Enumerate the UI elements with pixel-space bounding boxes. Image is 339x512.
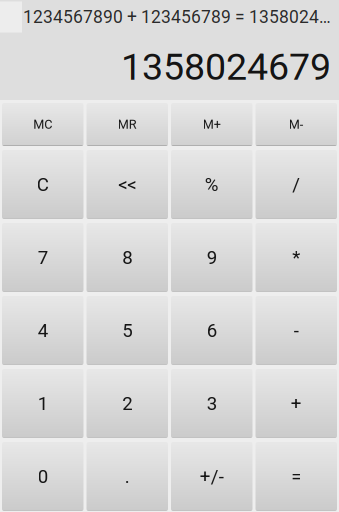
button[interactable]: 8: [86, 223, 168, 292]
staticText: 9: [207, 247, 217, 268]
button[interactable]: MC: [2, 103, 83, 146]
staticText: 5: [122, 320, 132, 341]
staticText: 8: [122, 247, 132, 268]
staticText: +/-: [200, 466, 224, 487]
button[interactable]: 2: [86, 369, 168, 438]
staticText: 1234567890 + 123456789 = 1358024679 |: [23, 7, 339, 27]
staticText: .: [125, 466, 130, 487]
staticText: 1: [38, 393, 48, 414]
staticText: M+: [203, 117, 221, 132]
staticText: <<: [118, 174, 136, 195]
staticText: 2: [122, 393, 132, 414]
button[interactable]: 6: [171, 296, 252, 365]
button[interactable]: 0: [2, 442, 83, 511]
staticText: M-: [289, 117, 304, 132]
button[interactable]: /: [255, 150, 337, 219]
button[interactable]: -: [255, 296, 337, 365]
button[interactable]: M-: [255, 103, 337, 146]
staticText: =: [291, 466, 301, 487]
button[interactable]: .: [86, 442, 168, 511]
staticText: 7: [38, 247, 48, 268]
button[interactable]: =: [255, 442, 337, 511]
staticText: MR: [118, 117, 137, 132]
staticText: 4: [38, 320, 48, 341]
button[interactable]: <<: [86, 150, 168, 219]
staticText: %: [205, 174, 219, 195]
button[interactable]: 4: [2, 296, 83, 365]
staticText: *: [292, 247, 300, 268]
staticText: -: [294, 320, 299, 341]
button[interactable]: +/-: [171, 442, 252, 511]
button[interactable]: MR: [86, 103, 168, 146]
button[interactable]: 9: [171, 223, 252, 292]
button[interactable]: *: [255, 223, 337, 292]
staticText: 6: [207, 320, 217, 341]
button[interactable]: %: [171, 150, 252, 219]
button[interactable]: 7: [2, 223, 83, 292]
button[interactable]: C: [2, 150, 83, 219]
button[interactable]: +: [255, 369, 337, 438]
staticText: 1358024679: [121, 45, 331, 89]
staticText: /: [292, 174, 300, 195]
staticText: +: [291, 393, 302, 414]
staticText: MC: [33, 117, 52, 132]
button[interactable]: 3: [171, 369, 252, 438]
staticText: 0: [38, 466, 48, 487]
staticText: C: [37, 174, 49, 195]
button[interactable]: 1: [2, 369, 83, 438]
button[interactable]: 5: [86, 296, 168, 365]
button[interactable]: M+: [171, 103, 252, 146]
staticText: 3: [207, 393, 217, 414]
